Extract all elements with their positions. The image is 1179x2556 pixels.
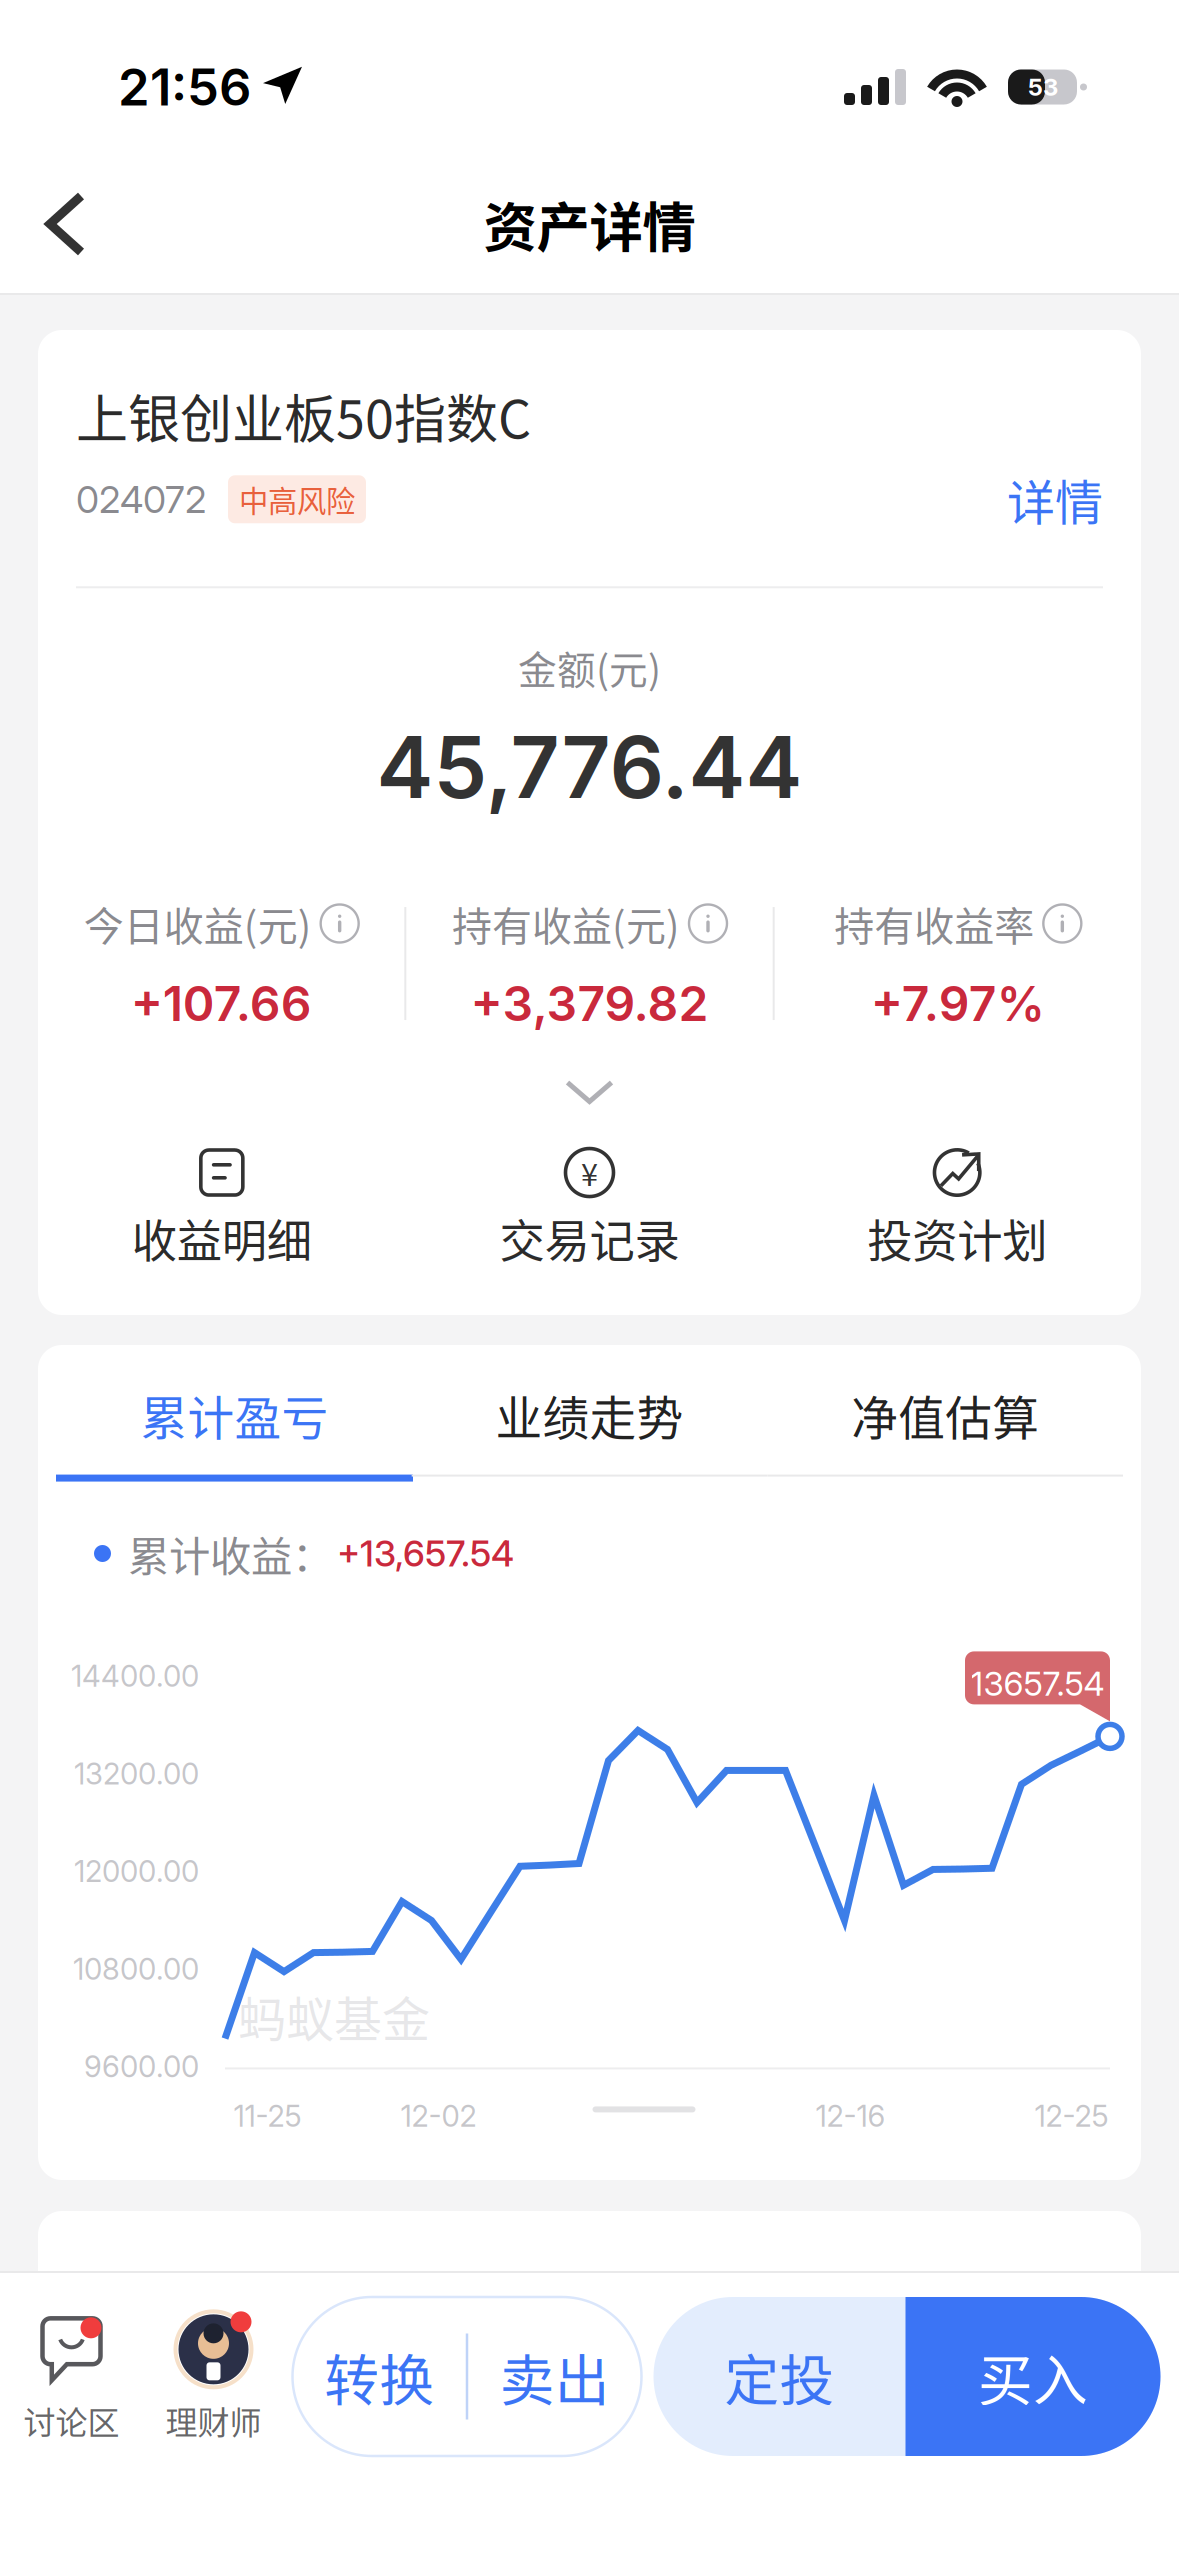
- staticText: 024072: [76, 477, 206, 522]
- staticText: 详情: [1007, 464, 1103, 534]
- staticText: 12-25: [1034, 2098, 1108, 2134]
- button[interactable]: 业绩走势: [412, 1345, 767, 1482]
- staticText: 12000.00: [74, 1854, 199, 1889]
- staticText: 13657.54: [970, 1663, 1104, 1704]
- staticText: 定投: [724, 2337, 834, 2416]
- button[interactable]: 转换: [293, 2297, 466, 2456]
- button[interactable]: 累计盈亏: [56, 1345, 412, 1482]
- staticText: 资产详情: [483, 185, 695, 263]
- staticText: 理财师: [165, 2397, 261, 2444]
- staticText: 上银创业板50指数C: [76, 2267, 504, 2338]
- button[interactable]: 定投: [653, 2297, 905, 2456]
- staticText: 卖出: [500, 2337, 610, 2416]
- staticText: 金额(元): [518, 639, 661, 695]
- button[interactable]: Back: [0, 160, 121, 288]
- staticText: 蚂蚁基金: [238, 1981, 430, 2051]
- staticText: 投资计划: [867, 1205, 1047, 1271]
- staticText: 13200.00: [74, 1756, 199, 1792]
- button[interactable]: ¥: [406, 1147, 773, 1271]
- staticText: 12-02: [400, 2098, 476, 2134]
- button[interactable]: Expand details: [487, 1056, 691, 1127]
- staticText: ¥: [581, 1150, 598, 1195]
- staticText: 今日收益(元): [84, 894, 312, 952]
- staticText: 累计盈亏: [140, 1381, 328, 1449]
- button[interactable]: 详情: [1007, 464, 1103, 534]
- staticText: 21:56: [118, 56, 251, 118]
- button[interactable]: 净值估算: [767, 1345, 1123, 1482]
- button[interactable]: 讨论区: [0, 2309, 142, 2444]
- staticText: 11-25: [233, 2098, 301, 2134]
- staticText: 上银创业板50指数C: [76, 378, 531, 453]
- staticText: 讨论区: [23, 2397, 119, 2444]
- staticText: 累计收益：: [128, 1524, 333, 1583]
- staticText: 业绩走势: [495, 1381, 683, 1449]
- button[interactable]: 投资计划: [773, 1147, 1141, 1271]
- staticText: 14400.00: [71, 1658, 199, 1694]
- staticText: 买入: [978, 2337, 1088, 2416]
- staticText: 12-16: [815, 2098, 885, 2134]
- staticText: 9600.00: [84, 2049, 199, 2084]
- staticText: +7.97%: [871, 974, 1045, 1033]
- staticText: 收益明细: [132, 1205, 312, 1271]
- button[interactable]: 收益明细: [38, 1147, 406, 1271]
- button[interactable]: 卖出: [468, 2297, 641, 2456]
- staticText: 持有收益率: [834, 894, 1034, 952]
- staticText: 45,776.44: [376, 715, 802, 818]
- staticText: +3,379.82: [470, 974, 708, 1033]
- staticText: 10800.00: [73, 1951, 199, 1987]
- staticText: +13,657.54: [337, 1532, 514, 1575]
- button[interactable]: 买入: [905, 2297, 1160, 2456]
- staticText: 持有收益(元): [452, 894, 680, 952]
- staticText: 中高风险: [239, 478, 355, 521]
- staticText: 交易记录: [499, 1205, 679, 1271]
- staticText: 53: [1028, 72, 1058, 101]
- staticText: 转换: [324, 2337, 434, 2416]
- staticText: 净值估算: [851, 1381, 1039, 1449]
- staticText: +107.66: [131, 974, 312, 1033]
- button[interactable]: 理财师: [142, 2309, 284, 2444]
